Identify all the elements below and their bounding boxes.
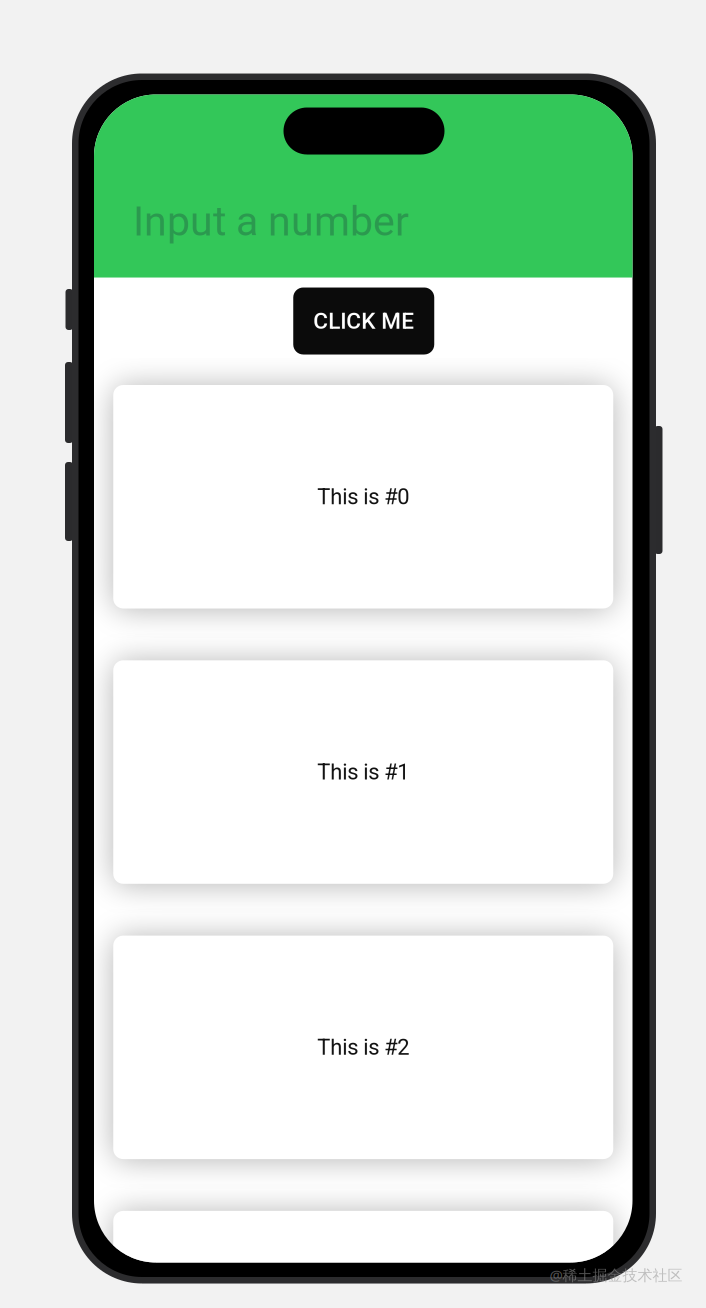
staticText: @稀土掘金技术社区 bbox=[549, 1265, 682, 1285]
staticText: This is #0 bbox=[317, 484, 409, 509]
staticText: CLICK ME bbox=[313, 308, 414, 334]
staticText: Input a number bbox=[133, 197, 409, 245]
staticText: This is #2 bbox=[317, 1034, 409, 1060]
staticText: This is #1 bbox=[317, 759, 409, 785]
button[interactable]: CLICK ME bbox=[293, 287, 434, 354]
